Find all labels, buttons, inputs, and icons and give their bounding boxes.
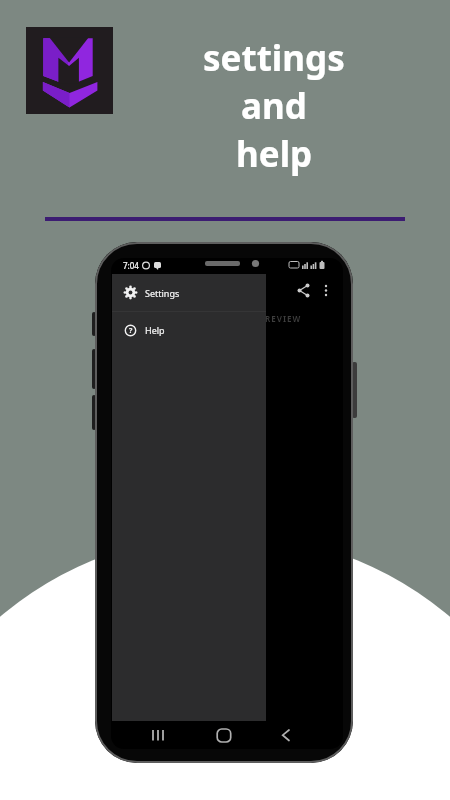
button[interactable]: ?: [112, 312, 266, 348]
staticText: settings: [203, 34, 345, 82]
button[interactable]: [146, 724, 170, 746]
staticText: 7:04: [123, 260, 139, 271]
staticText: help: [236, 130, 313, 178]
button[interactable]: [274, 724, 298, 746]
staticText: Help: [145, 324, 165, 336]
button[interactable]: [319, 281, 333, 300]
staticText: ?: [129, 326, 133, 336]
button[interactable]: [212, 724, 239, 746]
staticText: Settings: [145, 287, 180, 299]
staticText: and: [241, 82, 307, 130]
button[interactable]: Settings: [112, 274, 266, 311]
staticText: PREVIEW: [259, 313, 302, 324]
button[interactable]: [26, 27, 113, 114]
button[interactable]: [294, 281, 313, 300]
